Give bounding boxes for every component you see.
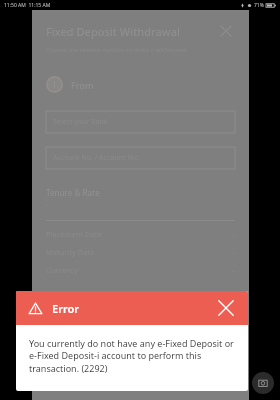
staticText: 11:50 AM 11:15 AM xyxy=(4,2,51,9)
staticText: Error xyxy=(52,301,216,316)
staticText: 1 xyxy=(52,79,57,90)
staticText: From xyxy=(71,79,94,91)
staticText: You currently do not have any e-Fixed De… xyxy=(29,337,235,375)
staticText: 71% xyxy=(254,2,264,9)
staticText: Tenure & Rate xyxy=(46,187,100,198)
button[interactable]: Close xyxy=(217,22,235,40)
button[interactable]: Screenshot xyxy=(252,372,274,394)
button[interactable]: Dismiss error xyxy=(216,298,236,318)
staticText: Fixed Deposit Withdrawal xyxy=(46,24,217,39)
